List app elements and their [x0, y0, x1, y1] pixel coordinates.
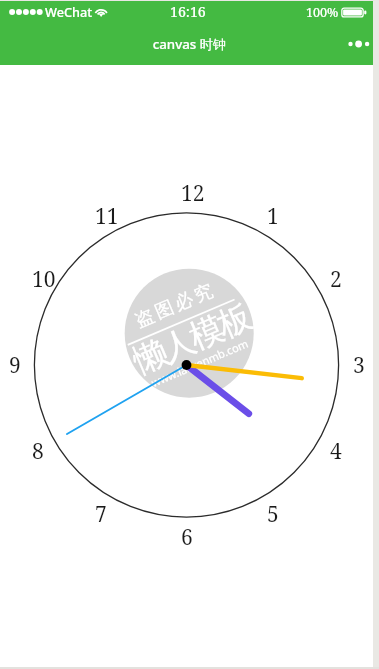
staticText: 16:16 — [170, 2, 206, 21]
staticText: 11 — [95, 202, 119, 231]
staticText: WeChat — [45, 3, 93, 20]
staticText: 懒人模板 — [128, 296, 257, 382]
staticText: 3 — [353, 351, 365, 380]
staticText: 12 — [181, 179, 205, 208]
staticText: 2 — [330, 265, 342, 294]
staticText: 盗图必究 — [132, 277, 219, 332]
staticText: 5 — [267, 500, 279, 529]
button[interactable]: More options — [335, 22, 379, 65]
staticText: 6 — [181, 523, 193, 552]
staticText: 8 — [32, 437, 44, 466]
staticText: canvas 时钟 — [0, 35, 379, 53]
staticText: 9 — [9, 351, 21, 380]
staticText: 100% — [306, 4, 339, 21]
staticText: 1 — [267, 202, 279, 231]
staticText: www.lanrenmb.com — [149, 336, 250, 390]
staticText: 4 — [330, 437, 342, 466]
staticText: 7 — [95, 500, 107, 529]
staticText: 10 — [32, 265, 56, 294]
